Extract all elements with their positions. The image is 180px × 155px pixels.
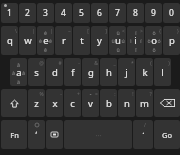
button[interactable]: =: [82, 89, 99, 117]
button[interactable]: 7: [109, 3, 126, 23]
staticText: ): [168, 60, 170, 67]
button[interactable]: %: [28, 89, 45, 117]
staticText: -: [60, 91, 62, 98]
staticText: ~: [68, 28, 71, 35]
button[interactable]: Shift: [1, 89, 27, 117]
button[interactable]: \: [1, 26, 18, 55]
button[interactable]: &: [82, 58, 99, 86]
button[interactable]: +: [64, 89, 81, 117]
staticText: b: [106, 97, 112, 110]
staticText: >: [140, 28, 143, 35]
staticText: v: [88, 97, 93, 110]
button[interactable]: -: [46, 89, 63, 117]
button[interactable]: 6: [91, 3, 108, 23]
staticText: u: [115, 34, 121, 47]
staticText: û: [116, 46, 120, 53]
button[interactable]: }: [163, 26, 180, 55]
staticText: é: [44, 29, 47, 36]
button[interactable]: @: [28, 58, 45, 86]
button[interactable]: {: [145, 26, 162, 55]
button[interactable]: Keyboard settings: [46, 120, 63, 149]
staticText: ]: [105, 28, 107, 35]
button[interactable]: _: [100, 58, 117, 86]
button[interactable]: >: [127, 26, 144, 55]
button[interactable]: ,: [28, 120, 45, 149]
button[interactable]: (: [136, 58, 153, 86]
staticText: :: [114, 91, 116, 98]
staticText: 5: [79, 7, 84, 19]
button[interactable]: :: [100, 89, 117, 117]
button[interactable]: 5: [73, 3, 90, 23]
button[interactable]: |: [19, 26, 36, 55]
button[interactable]: Fn: [1, 120, 27, 149]
staticText: z: [34, 97, 39, 110]
button[interactable]: !: [118, 89, 135, 117]
button[interactable]: 4: [55, 3, 72, 23]
staticText: |: [50, 28, 53, 35]
staticText: -: [78, 60, 80, 67]
staticText: m: [140, 97, 149, 110]
button[interactable]: 2: [19, 3, 36, 23]
staticText: a: [16, 66, 22, 79]
staticText: ê: [44, 46, 47, 53]
staticText: 7: [115, 7, 120, 19]
button[interactable]: 0: [163, 3, 180, 23]
staticText: h: [106, 66, 112, 79]
staticText: .: [142, 125, 145, 137]
staticText: w: [24, 34, 32, 47]
staticText: y: [97, 34, 102, 47]
staticText: k: [142, 66, 148, 79]
button[interactable]: ?: [136, 89, 153, 117]
button[interactable]: 1: [1, 3, 18, 23]
staticText: á: [22, 69, 25, 76]
button[interactable]: 9: [145, 3, 162, 23]
button[interactable]: Backspace: [154, 89, 180, 117]
staticText: ü: [116, 29, 120, 36]
staticText: i: [134, 34, 137, 47]
staticText: {: [159, 28, 161, 35]
staticText: ö: [152, 29, 156, 36]
staticText: p: [169, 34, 175, 47]
staticText: n: [124, 97, 130, 110]
button[interactable]: 3: [37, 3, 54, 23]
button[interactable]: 8: [127, 3, 144, 23]
staticText: f: [71, 66, 75, 79]
button[interactable]: |: [37, 26, 54, 55]
staticText: d: [52, 66, 58, 79]
staticText: [: [87, 28, 89, 35]
staticText: s: [34, 66, 39, 79]
staticText: 3: [43, 7, 48, 19]
staticText: â: [17, 61, 20, 68]
button[interactable]: /: [133, 120, 153, 149]
staticText: %: [39, 91, 44, 98]
staticText: #: [58, 60, 62, 67]
staticText: =: [95, 91, 98, 98]
button[interactable]: *: [118, 58, 135, 86]
staticText: ò: [147, 37, 151, 44]
staticText: 6: [97, 7, 102, 19]
staticText: Go: [162, 130, 172, 140]
staticText: ï: [135, 29, 137, 36]
staticText: @: [39, 60, 44, 67]
staticText: !: [132, 91, 134, 98]
staticText: ú: [121, 37, 125, 44]
button[interactable]: Go: [154, 120, 180, 149]
staticText: ,: [35, 124, 38, 136]
button[interactable]: â: [10, 58, 27, 86]
staticText: ?: [149, 91, 152, 98]
staticText: |: [32, 28, 35, 35]
staticText: r: [62, 34, 66, 47]
button[interactable]: ]: [91, 26, 108, 55]
button[interactable]: <: [109, 26, 126, 55]
button[interactable]: ~: [55, 26, 72, 55]
staticText: (: [150, 60, 152, 67]
button[interactable]: ): [154, 58, 171, 86]
button[interactable]: -: [64, 58, 81, 86]
staticText: í: [140, 37, 142, 44]
staticText: ô: [152, 46, 156, 53]
button[interactable]: [: [73, 26, 90, 55]
button[interactable]: #: [46, 58, 63, 86]
staticText: 9: [151, 7, 156, 19]
staticText: ì: [130, 37, 132, 44]
